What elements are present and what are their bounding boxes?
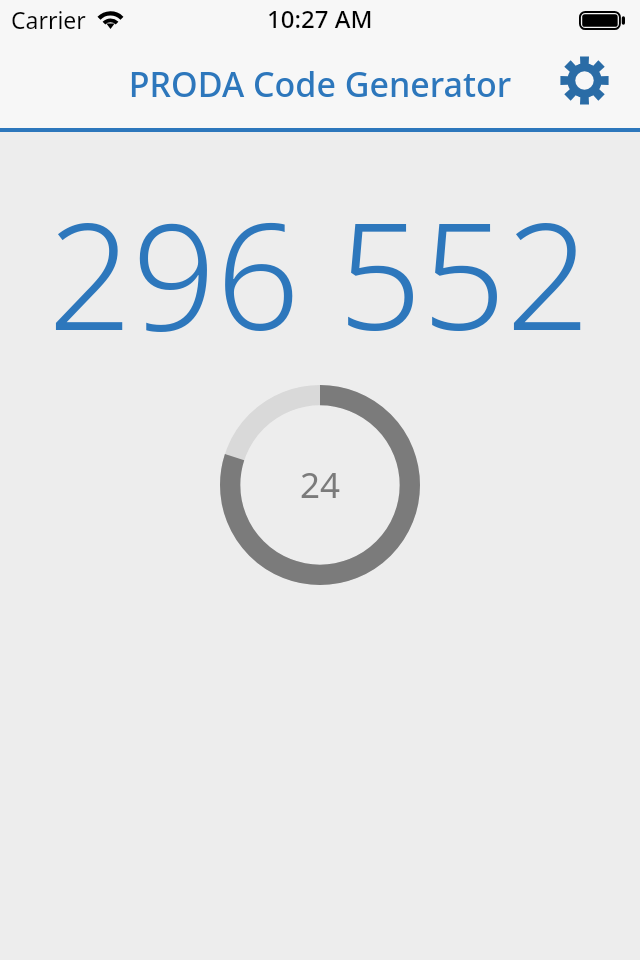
staticText: PRODA Code Generator	[0, 61, 640, 107]
staticText: Carrier	[11, 4, 86, 35]
staticText: 10:27 AM	[267, 2, 373, 35]
staticText: 296 552	[0, 173, 639, 373]
button[interactable]: Settings	[553, 49, 616, 112]
staticText: 24	[300, 461, 341, 509]
